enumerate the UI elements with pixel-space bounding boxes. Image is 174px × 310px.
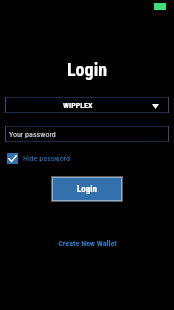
button[interactable]: WIPPLEX [5, 97, 169, 113]
staticText: Login [77, 184, 98, 195]
staticText: Your password [9, 130, 56, 139]
button[interactable]: Your password [5, 126, 169, 142]
staticText: Login [67, 59, 108, 80]
button[interactable]: Hide password [7, 153, 70, 164]
staticText: WIPPLEX [63, 101, 93, 110]
button[interactable]: Login [53, 178, 121, 200]
staticText: Hide password [23, 154, 70, 163]
button[interactable]: Create New Wallet [58, 239, 117, 248]
